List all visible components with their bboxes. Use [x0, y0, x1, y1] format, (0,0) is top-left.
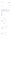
- button[interactable]: More: [9, 5, 11, 7]
- staticText: 9:41: [1, 2, 4, 3]
- button[interactable]: Recently Added: [1, 17, 10, 25]
- button[interactable]: Favourites: [1, 31, 10, 36]
- button[interactable]: Downloaded: [1, 25, 10, 31]
- staticText: Favourites: [3, 32, 7, 35]
- staticText: Library: [1, 9, 10, 16]
